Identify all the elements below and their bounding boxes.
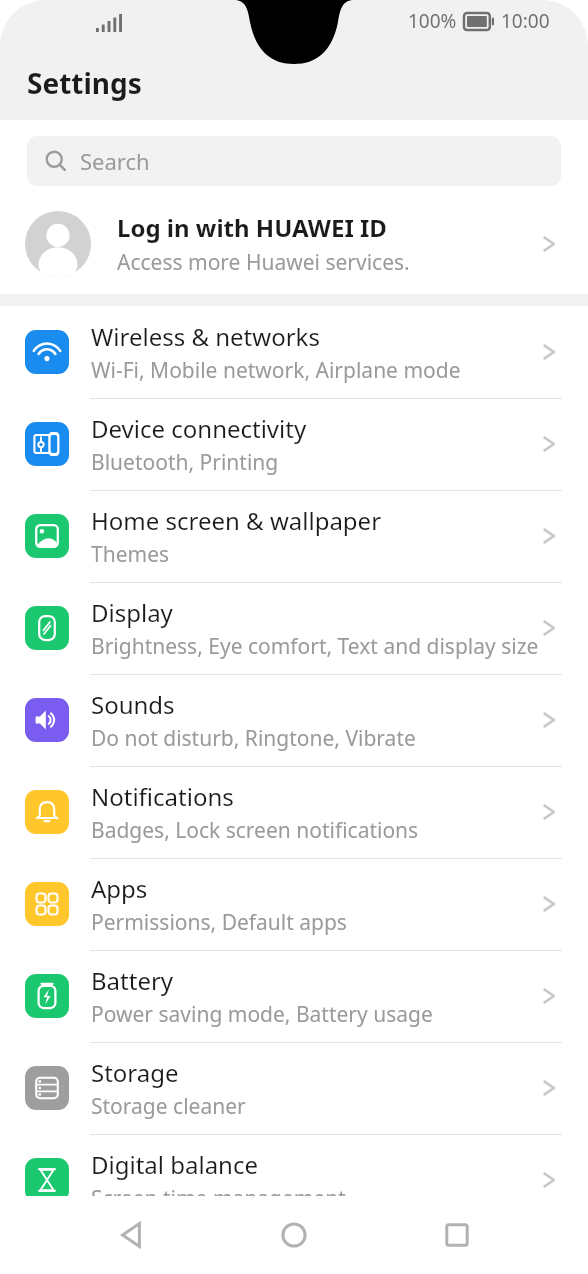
staticText: Bluetooth, Printing [91,448,279,477]
staticText: Log in with HUAWEI ID [117,211,387,244]
staticText: Screen time management [91,1184,346,1213]
staticText: Apps [91,872,148,905]
staticText: Storage [91,1056,179,1089]
button[interactable]: Device connectivity [0,398,588,490]
staticText: Power saving mode, Battery usage [91,1000,433,1029]
button[interactable]: Recents [425,1203,489,1267]
button[interactable]: Home screen & wallpaper [0,490,588,582]
button[interactable]: Battery [0,950,588,1042]
button[interactable]: Apps [0,858,588,950]
staticText: Digital balance [91,1148,258,1181]
button[interactable]: Notifications [0,766,588,858]
staticText: Access more Huawei services. [117,248,410,277]
staticText: Storage cleaner [91,1092,246,1121]
staticText: Wi-Fi, Mobile network, Airplane mode [91,356,461,385]
staticText: 100% [408,8,457,34]
button[interactable]: Wireless & networks [0,306,588,398]
button[interactable]: Sounds [0,674,588,766]
button[interactable]: Digital balance [0,1134,588,1226]
staticText: Brightness, Eye comfort, Text and displa… [91,632,539,661]
staticText: Search [80,146,150,176]
staticText: 10:00 [501,8,550,34]
button[interactable]: Home [262,1203,326,1267]
button[interactable]: Log in with HUAWEI ID [0,199,588,289]
staticText: Permissions, Default apps [91,908,347,937]
staticText: Home screen & wallpaper [91,504,382,537]
button[interactable]: Storage [0,1042,588,1134]
button[interactable]: Search [27,136,561,186]
staticText: Device connectivity [91,412,307,445]
staticText: Badges, Lock screen notifications [91,816,419,845]
staticText: Wireless & networks [91,320,320,353]
staticText: Sounds [91,688,175,721]
staticText: Battery [91,964,174,997]
button[interactable]: Display [0,582,588,674]
staticText: Do not disturb, Ringtone, Vibrate [91,724,416,753]
staticText: Themes [91,540,170,569]
button[interactable]: Back [99,1203,163,1267]
staticText: Display [91,596,173,629]
staticText: Settings [27,64,142,102]
staticText: Notifications [91,780,234,813]
